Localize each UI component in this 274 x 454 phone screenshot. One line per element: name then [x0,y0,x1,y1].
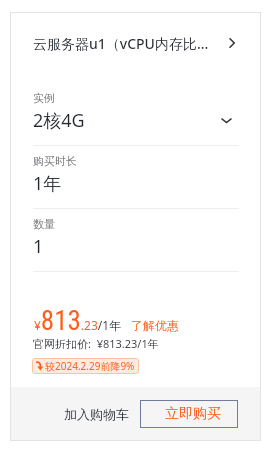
button[interactable]: 购买时长 [33,146,239,209]
staticText: 数量 [33,217,55,231]
staticText: 了解优惠 [131,318,179,333]
button[interactable]: 立即购买 [140,400,238,428]
button[interactable]: 了解优惠 [122,318,179,337]
other: Expand [221,115,232,126]
staticText: 实例 [33,91,55,105]
button[interactable]: 实例 [33,74,239,146]
other: More [227,38,237,48]
button[interactable]: 数量 [33,209,239,272]
button[interactable]: 云服务器u1（vCPU内存比... [10,12,261,74]
staticText: ¥813.23/1年 [34,305,122,337]
staticText: 1 [33,234,44,259]
staticText: 较2024.2.29前降9% [45,359,135,373]
staticText: 1年 [33,171,62,196]
button[interactable]: 加入购物车 [55,400,138,428]
staticText: 2核4G [33,108,85,133]
staticText: 购买时长 [33,154,77,168]
staticText: 官网折扣价: ¥813.23/1年 [33,336,159,351]
staticText: 云服务器u1（vCPU内存比... [33,34,209,53]
staticText: 立即购买 [165,405,221,423]
staticText: 加入购物车 [64,406,129,422]
